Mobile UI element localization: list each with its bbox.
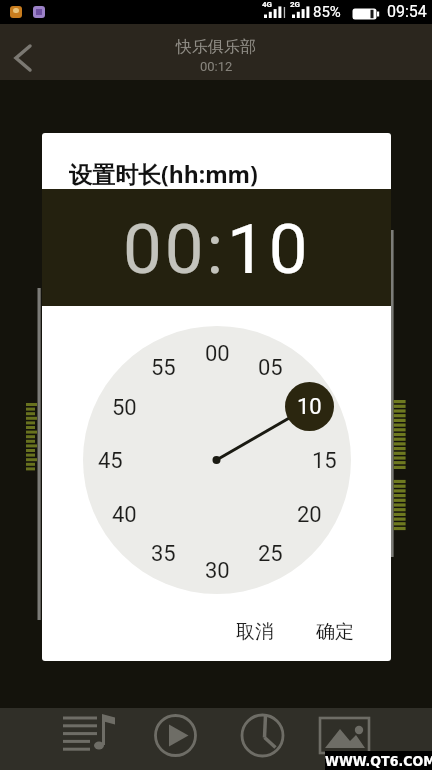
button[interactable]: 25 <box>248 541 292 565</box>
staticText: 00: <box>123 209 227 290</box>
staticText: 2G <box>290 0 301 9</box>
button[interactable]: 30 <box>195 558 239 582</box>
button[interactable]: 40 <box>102 502 146 526</box>
button[interactable]: 取消 <box>236 620 274 644</box>
button[interactable]: 20 <box>287 502 331 526</box>
staticText: 20 <box>297 502 322 526</box>
button[interactable]: 35 <box>141 541 185 565</box>
staticText: 35 <box>151 541 176 565</box>
button[interactable]: 10 <box>285 382 334 431</box>
staticText: WWW.QT6.COM <box>325 753 432 769</box>
staticText: 00:12 <box>200 59 233 74</box>
staticText: 50 <box>112 395 137 419</box>
button[interactable]: 15 <box>302 448 346 472</box>
staticText: 25 <box>258 541 283 565</box>
staticText: 设置时长(hh:mm) <box>69 158 258 189</box>
staticText: 4G <box>262 0 273 9</box>
button[interactable]: 00 <box>195 341 239 365</box>
button[interactable]: 45 <box>88 448 132 472</box>
button[interactable]: 05 <box>248 355 292 379</box>
button[interactable] <box>0 24 48 80</box>
staticText: 确定 <box>316 620 354 644</box>
staticText: 取消 <box>236 620 274 644</box>
staticText: 00 <box>205 341 230 365</box>
staticText: 30 <box>205 558 230 582</box>
button[interactable]: 55 <box>141 355 185 379</box>
button[interactable] <box>0 708 108 770</box>
staticText: 15 <box>312 448 337 472</box>
staticText: 55 <box>151 355 176 379</box>
staticText: 85% <box>313 3 341 21</box>
staticText: 05 <box>258 355 283 379</box>
staticText: 快乐俱乐部 <box>176 37 256 57</box>
staticText: 10 <box>297 394 322 420</box>
staticText: 40 <box>112 502 137 526</box>
button[interactable] <box>324 708 432 770</box>
staticText: 09:54 <box>387 2 427 21</box>
staticText: 45 <box>98 448 123 472</box>
button[interactable] <box>108 708 216 770</box>
button[interactable] <box>216 708 324 770</box>
button[interactable]: 50 <box>102 395 146 419</box>
button[interactable]: 确定 <box>316 620 354 644</box>
staticText: 10 <box>227 209 311 290</box>
